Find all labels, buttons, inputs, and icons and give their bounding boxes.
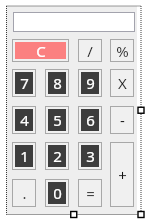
button[interactable]: 5 bbox=[45, 106, 69, 134]
button[interactable]: 3 bbox=[78, 142, 102, 170]
staticText: 0 bbox=[53, 183, 62, 203]
button[interactable]: - bbox=[110, 106, 134, 134]
staticText: + bbox=[118, 165, 127, 185]
staticText: X bbox=[118, 73, 127, 93]
staticText: 6 bbox=[86, 110, 95, 130]
button[interactable]: 9 bbox=[78, 69, 102, 97]
button[interactable]: 4 bbox=[12, 106, 36, 134]
button[interactable]: / bbox=[78, 39, 102, 62]
button[interactable]: 1 bbox=[12, 142, 36, 170]
staticText: % bbox=[116, 41, 129, 61]
button[interactable]: 8 bbox=[45, 69, 69, 97]
button[interactable] bbox=[13, 12, 135, 32]
staticText: - bbox=[120, 110, 125, 130]
staticText: C bbox=[36, 41, 46, 61]
button[interactable]: C bbox=[12, 39, 69, 62]
button[interactable]: X bbox=[110, 69, 134, 97]
staticText: 3 bbox=[86, 146, 95, 166]
button[interactable]: 2 bbox=[45, 142, 69, 170]
staticText: 2 bbox=[53, 146, 62, 166]
staticText: 9 bbox=[86, 73, 95, 93]
staticText: 5 bbox=[53, 110, 62, 130]
button[interactable]: . bbox=[12, 179, 36, 207]
staticText: = bbox=[86, 183, 95, 203]
staticText: 7 bbox=[20, 73, 29, 93]
staticText: / bbox=[87, 41, 93, 61]
button[interactable]: % bbox=[110, 39, 134, 62]
button[interactable]: 7 bbox=[12, 69, 36, 97]
staticText: 1 bbox=[20, 146, 29, 166]
button[interactable]: = bbox=[78, 179, 102, 207]
staticText: 8 bbox=[53, 73, 62, 93]
button[interactable]: 6 bbox=[78, 106, 102, 134]
button[interactable]: + bbox=[110, 142, 134, 207]
button[interactable]: 0 bbox=[45, 179, 69, 207]
staticText: . bbox=[22, 183, 27, 203]
staticText: 4 bbox=[20, 110, 29, 130]
